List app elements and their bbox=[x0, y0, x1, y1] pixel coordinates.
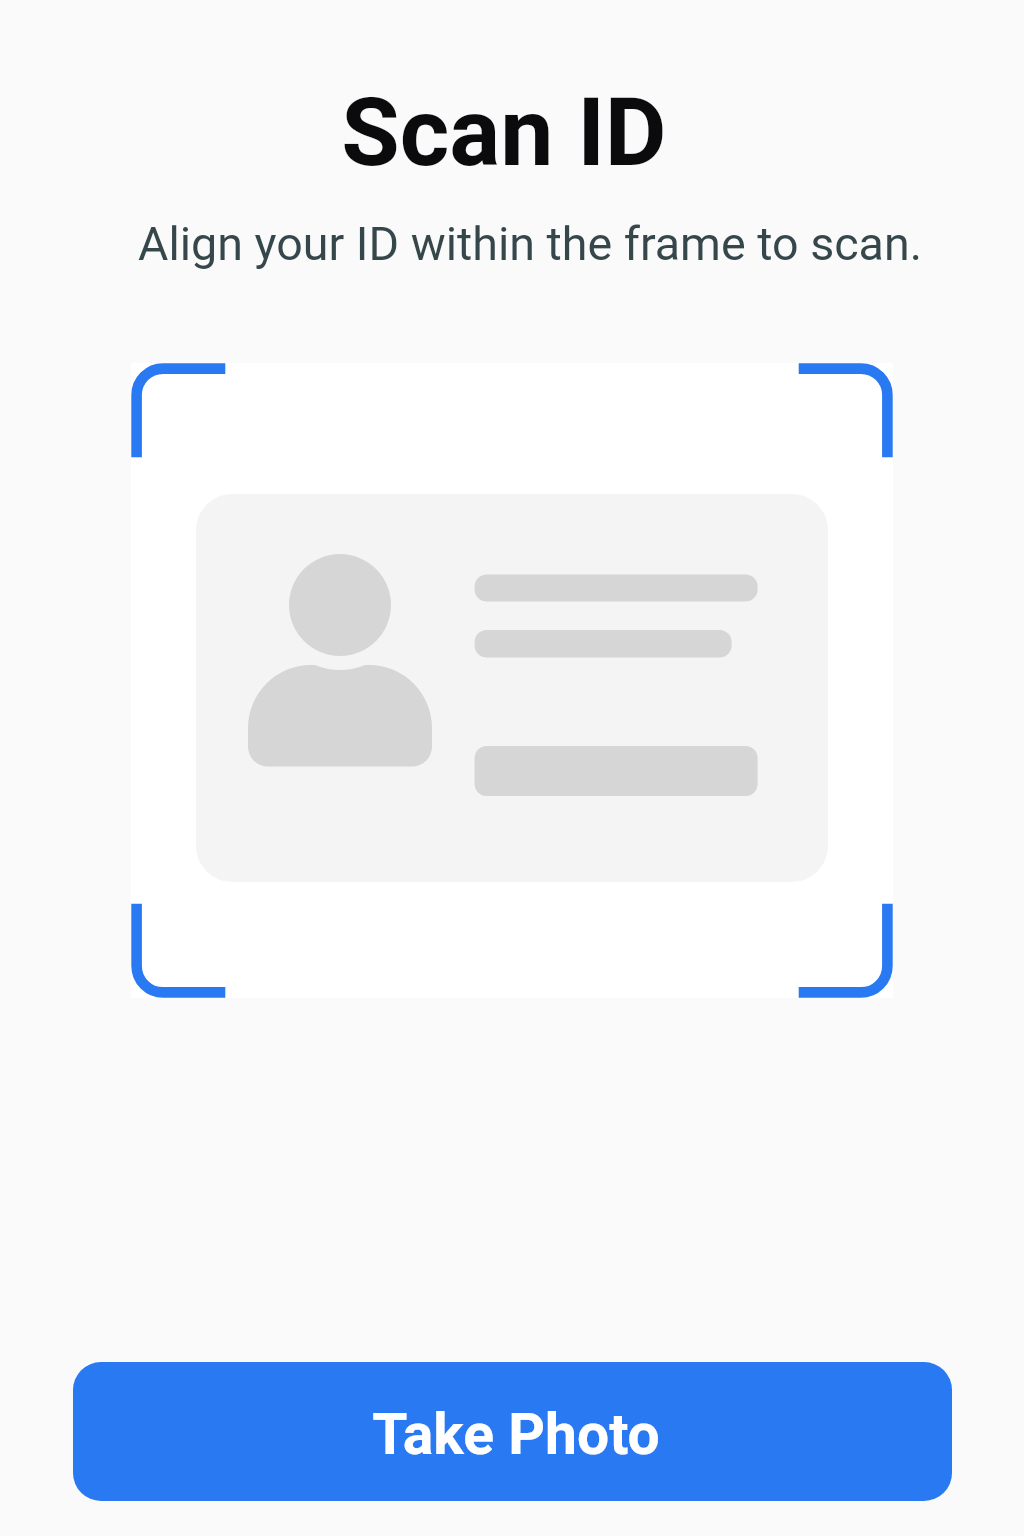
staticText: Scan ID bbox=[0, 77, 1016, 188]
staticText: Take Photo bbox=[372, 1401, 660, 1468]
staticText: Align your ID within the frame to scan. bbox=[18, 217, 1024, 272]
button[interactable]: Take Photo bbox=[73, 1362, 952, 1501]
other: ID scanning viewfinder bbox=[131, 363, 893, 998]
